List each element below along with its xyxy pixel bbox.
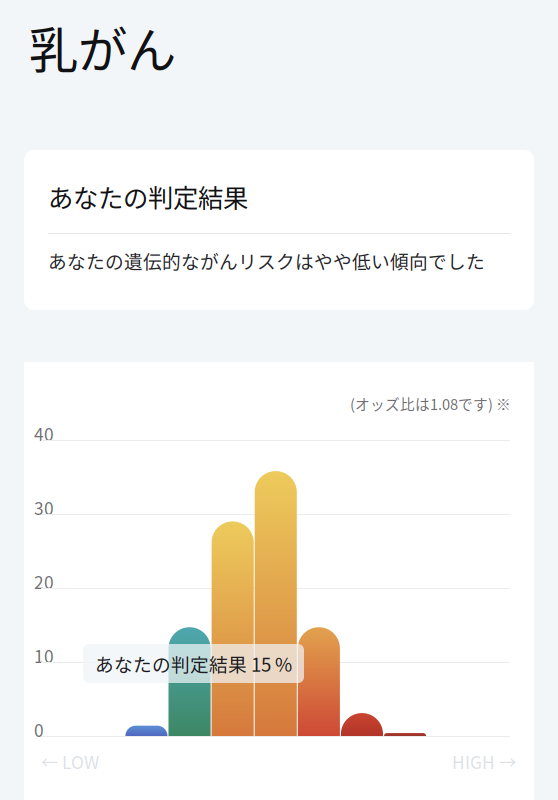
- staticText: ← LOW: [41, 749, 99, 774]
- staticText: (オッズ比は1.08です) ※: [350, 393, 511, 414]
- staticText: 乳がん: [29, 11, 176, 82]
- staticText: 20: [34, 569, 54, 594]
- staticText: あなたの遺伝的ながんリスクはやや低い傾向でした: [48, 247, 485, 274]
- staticText: HIGH →: [452, 749, 516, 774]
- staticText: 10: [34, 643, 54, 668]
- staticText: 40: [34, 421, 54, 446]
- staticText: 0: [34, 717, 44, 742]
- staticText: 30: [34, 495, 54, 520]
- staticText: あなたの判定結果 15 %: [95, 650, 292, 677]
- staticText: あなたの判定結果: [48, 178, 248, 215]
